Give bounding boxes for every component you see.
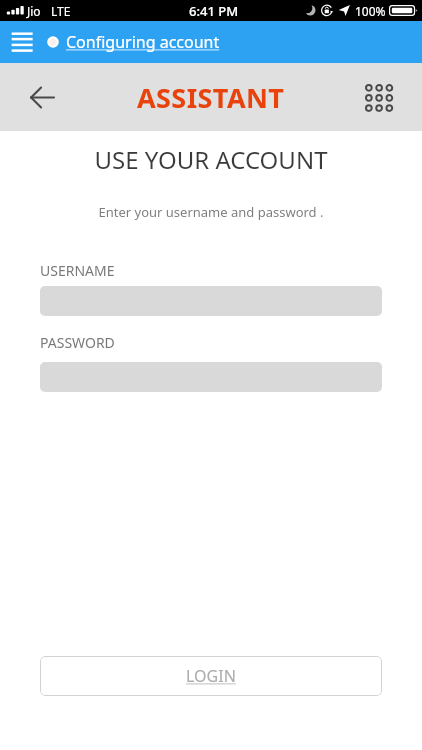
staticText: Jio: [27, 3, 41, 19]
button[interactable]: Menu: [6, 26, 38, 58]
button[interactable]: Back: [24, 79, 60, 115]
staticText: Configuring account: [66, 31, 220, 53]
staticText: 6:41 PM: [189, 2, 239, 20]
staticText: LOGIN: [186, 665, 236, 687]
staticText: USERNAME: [40, 261, 115, 280]
staticText: Enter your username and password .: [0, 203, 422, 221]
staticText: ASSISTANT: [137, 79, 285, 116]
staticText: 100%: [355, 3, 386, 19]
button[interactable]: LOGIN: [40, 656, 382, 696]
staticText: PASSWORD: [40, 333, 115, 352]
staticText: USE YOUR ACCOUNT: [0, 143, 422, 176]
button[interactable]: Apps: [360, 78, 398, 116]
staticText: LTE: [51, 3, 71, 19]
